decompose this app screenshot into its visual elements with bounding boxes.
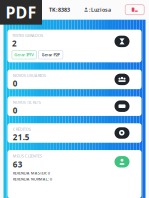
staticText: NOVOS USUÁRIOS	[13, 73, 46, 78]
staticText: 2	[12, 38, 17, 49]
button[interactable]: PDF	[0, 0, 42, 25]
staticText: CRÉDITOS	[13, 126, 31, 132]
staticText: TESTES GERADOS	[12, 33, 43, 38]
button[interactable]: Gerar IPTV	[12, 50, 36, 59]
staticText: MEUS CLIENTES	[13, 153, 42, 158]
button[interactable]: Gerar P2P	[38, 50, 63, 59]
staticText: Gerar IPTV	[14, 52, 34, 57]
button[interactable]: : Luziosa	[84, 6, 111, 13]
staticText: 63	[13, 159, 23, 170]
staticText: 21.5	[13, 132, 30, 142]
staticText: PDF	[5, 2, 36, 23]
staticText: TK: 8383	[49, 6, 70, 13]
staticText: : Luziosa	[89, 6, 111, 13]
staticText: REVENDA NORMAL: 0	[13, 176, 52, 182]
staticText: NOVOS TICKETS	[13, 100, 41, 105]
staticText: REVENDA MASTER: 0	[13, 170, 50, 176]
staticText: 0	[13, 78, 18, 89]
staticText: Gerar P2P	[42, 52, 60, 57]
staticText: 0	[13, 105, 18, 116]
button[interactable]: Sair	[125, 5, 144, 15]
